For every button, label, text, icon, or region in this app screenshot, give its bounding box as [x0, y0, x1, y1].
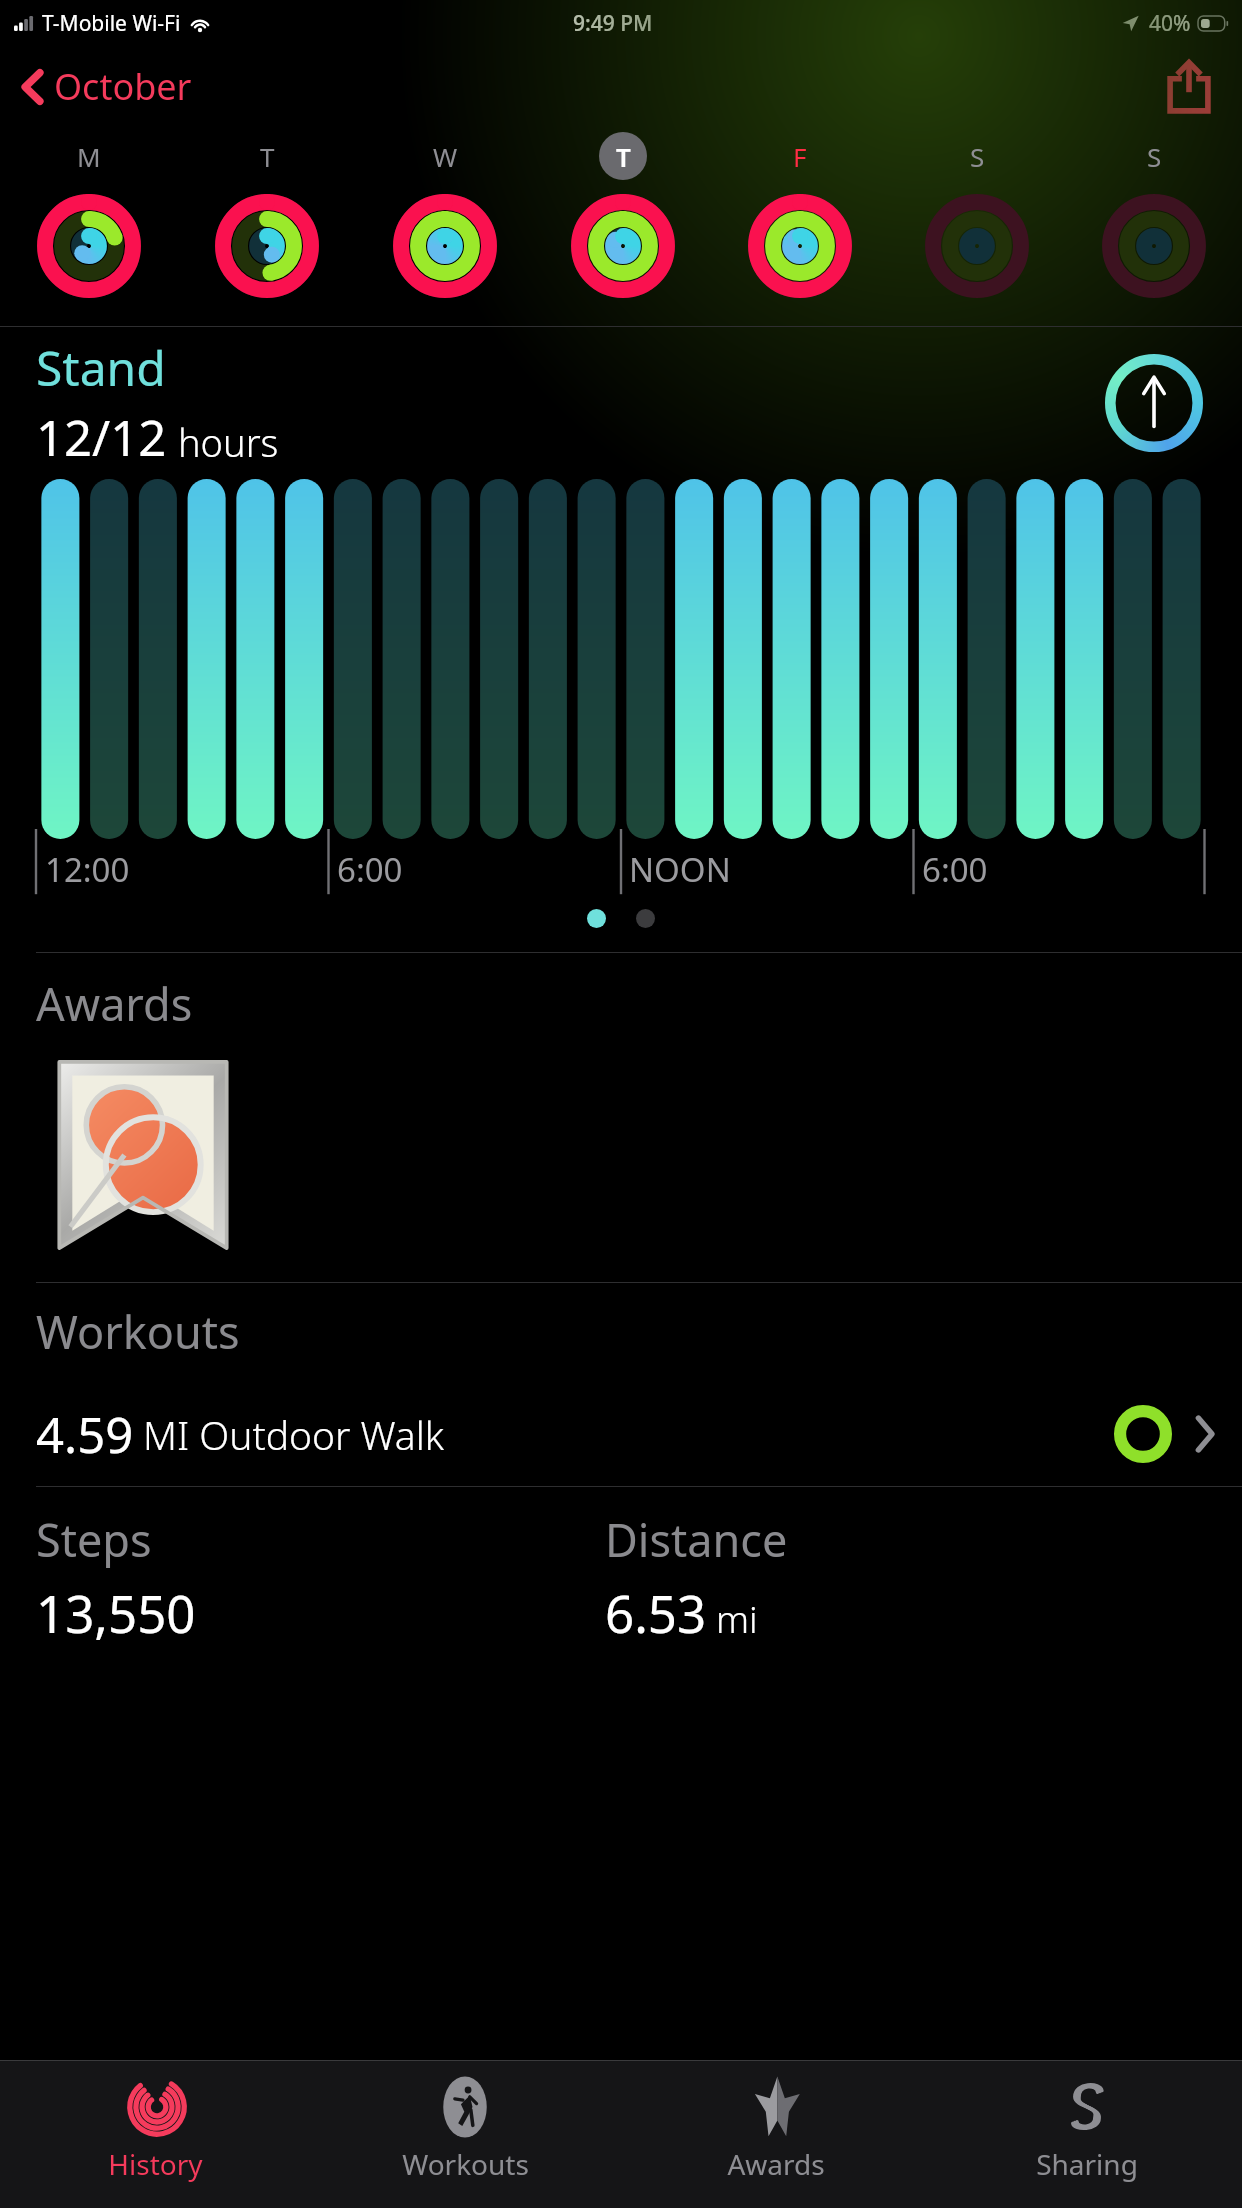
staticText: T-Mobile Wi-Fi	[42, 9, 181, 38]
staticText: Workouts	[402, 2145, 529, 2183]
staticText: Awards	[727, 2145, 825, 2183]
staticText: 4.59	[36, 1401, 134, 1468]
staticText: Steps	[36, 1509, 152, 1570]
staticText: 40%	[1149, 9, 1191, 38]
button[interactable]: T	[178, 126, 356, 326]
staticText: Stand	[36, 335, 166, 400]
button[interactable]: W	[356, 126, 534, 326]
staticText: 9:49 PM	[573, 9, 653, 38]
staticText: S	[970, 139, 985, 174]
button[interactable]: S	[1065, 126, 1242, 326]
button[interactable]: Share	[1158, 56, 1220, 118]
button[interactable]: October	[16, 54, 198, 119]
button[interactable]: Share Stand	[1102, 351, 1206, 455]
staticText: 6:00	[922, 847, 988, 892]
button[interactable]: History	[0, 2061, 310, 2208]
staticText: 6:00	[337, 847, 403, 892]
staticText: F	[793, 139, 807, 174]
staticText: Sharing	[1036, 2145, 1138, 2183]
staticText: M	[77, 139, 101, 174]
staticText: mi	[716, 1593, 758, 1643]
staticText: 12:00	[45, 847, 130, 892]
staticText: NOON	[629, 847, 731, 892]
staticText: 6.53	[605, 1578, 707, 1647]
staticText: History	[108, 2145, 203, 2183]
button[interactable]: 4.59	[0, 1386, 1242, 1482]
staticText: Awards	[36, 973, 193, 1034]
staticText: 12/12	[36, 404, 167, 471]
staticText: W	[433, 139, 458, 174]
button[interactable]: Distance	[605, 1509, 1242, 1647]
staticText: hours	[178, 416, 279, 468]
staticText: October	[54, 62, 192, 111]
staticText: 13,550	[36, 1578, 196, 1647]
button[interactable]: Sharing	[931, 2061, 1242, 2208]
staticText: MI Outdoor Walk	[143, 1408, 445, 1461]
staticText: Distance	[605, 1509, 788, 1570]
staticText: T	[260, 139, 275, 174]
button[interactable]: T	[534, 126, 711, 326]
staticText: T	[616, 139, 631, 174]
button[interactable]: S	[888, 126, 1065, 326]
button[interactable]: Steps	[36, 1509, 605, 1647]
staticText: Workouts	[36, 1301, 240, 1362]
button[interactable]: F	[711, 126, 888, 326]
staticText: S	[1147, 139, 1162, 174]
button[interactable]: Awards	[0, 953, 1242, 1282]
button[interactable]: Workouts	[310, 2061, 620, 2208]
button[interactable]: Awards	[620, 2061, 931, 2208]
button[interactable]: M	[0, 126, 178, 326]
